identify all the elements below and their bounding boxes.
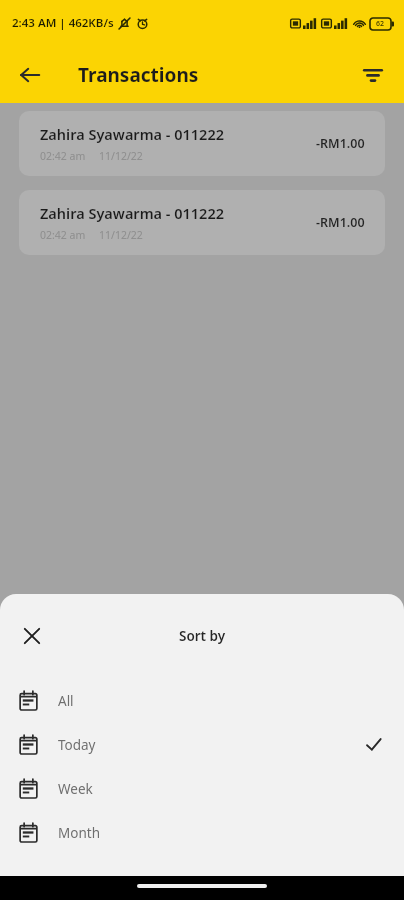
- staticText: Week: [58, 780, 93, 798]
- button[interactable]: Zahira Syawarma - 011222: [19, 111, 385, 176]
- staticText: 02:42 am: [40, 228, 86, 242]
- staticText: Zahira Syawarma - 011222: [40, 203, 225, 223]
- staticText: All: [58, 692, 74, 710]
- staticText: 11/12/22: [99, 149, 143, 163]
- staticText: -RM1.00: [316, 135, 365, 152]
- button[interactable]: All: [0, 678, 404, 722]
- staticText: Transactions: [78, 62, 199, 88]
- staticText: 11/12/22: [99, 228, 143, 242]
- staticText: 2:43 AM | 462KB/s: [12, 15, 114, 31]
- staticText: -RM1.00: [316, 214, 365, 231]
- button[interactable]: Today: [0, 722, 404, 766]
- staticText: 02:42 am: [40, 149, 86, 163]
- staticText: Sort by: [179, 627, 226, 645]
- staticText: 62: [376, 19, 385, 29]
- staticText: Today: [58, 736, 96, 754]
- button[interactable]: Back: [8, 53, 52, 97]
- button[interactable]: Zahira Syawarma - 011222: [19, 190, 385, 255]
- button[interactable]: Sort by: [352, 54, 394, 96]
- staticText: Month: [58, 824, 100, 842]
- button[interactable]: Week: [0, 766, 404, 810]
- button[interactable]: Close: [10, 614, 54, 658]
- button[interactable]: Month: [0, 810, 404, 854]
- staticText: Zahira Syawarma - 011222: [40, 124, 225, 144]
